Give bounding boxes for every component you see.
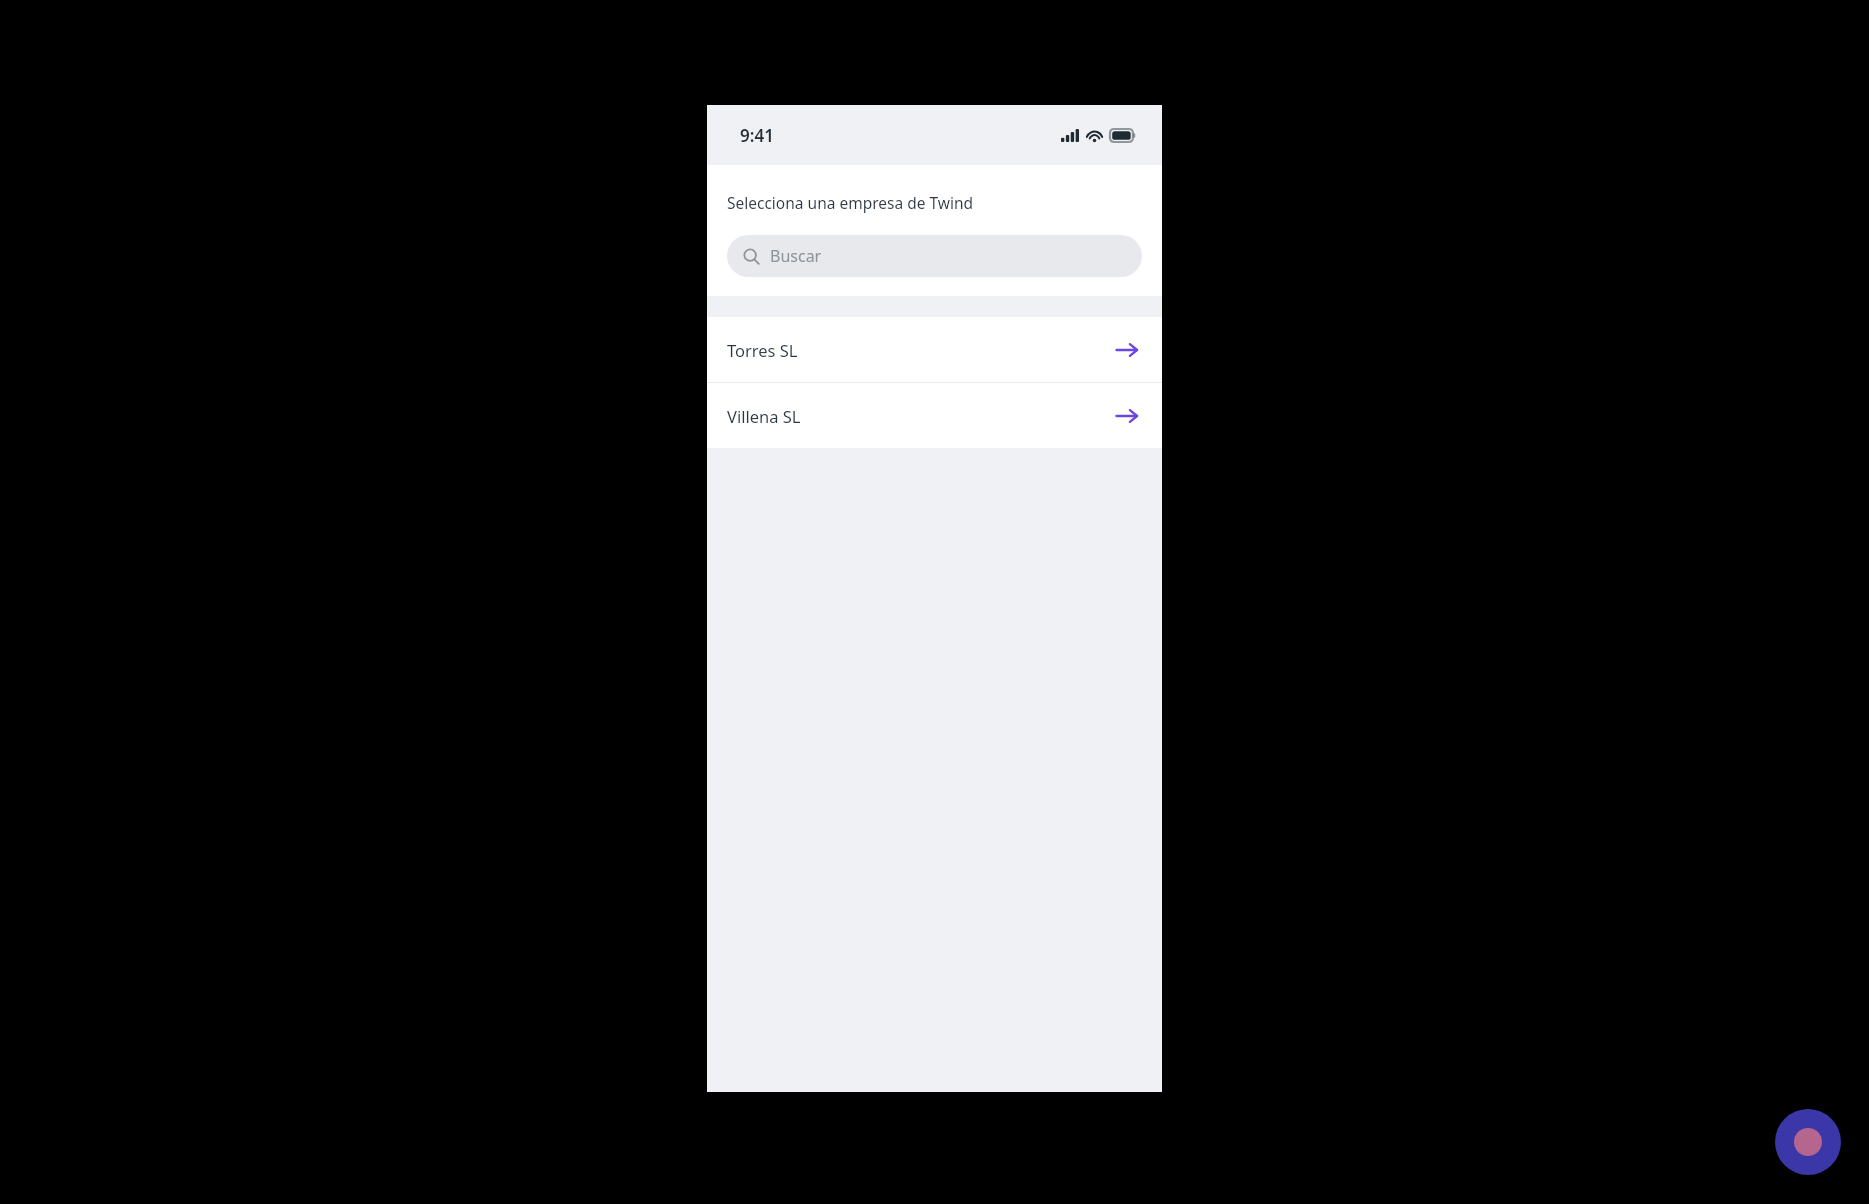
staticText: Selecciona una empresa de Twind [727, 192, 974, 213]
button[interactable]: Buscar [727, 235, 1142, 277]
button[interactable]: Villena SL [707, 383, 1162, 448]
other: Open Villena SL [1112, 401, 1142, 431]
other: Open Torres SL [1112, 335, 1142, 365]
staticText: Torres SL [727, 339, 1112, 361]
staticText: 9:41 [740, 124, 774, 147]
staticText: Buscar [770, 245, 822, 267]
staticText: Villena SL [727, 405, 1112, 427]
button[interactable]: Torres SL [707, 317, 1162, 382]
button[interactable]: Record [1775, 1109, 1841, 1175]
